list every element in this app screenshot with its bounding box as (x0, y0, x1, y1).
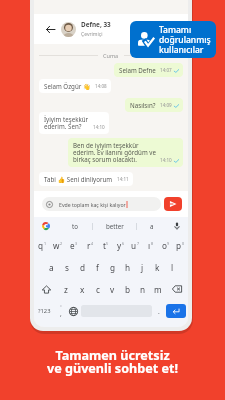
staticText: Tamamı doğrulanmış kullanıcılar (159, 24, 211, 55)
button[interactable]: y (113, 235, 128, 256)
button[interactable]: u (128, 235, 143, 256)
staticText: j (141, 262, 144, 273)
staticText: Selam Özgür 👋 (44, 82, 91, 90)
button[interactable]: better (93, 217, 136, 235)
staticText: a (49, 262, 54, 273)
button[interactable]: ı (143, 235, 158, 256)
button[interactable]: Google (34, 217, 58, 235)
staticText: Ben de iyiyim teşekkür ederim. Ev ilanın… (73, 141, 156, 164)
staticText: Defne, 33 (81, 20, 111, 29)
staticText: Nasılsın? (130, 101, 156, 109)
staticText: 2 (60, 241, 63, 246)
staticText: 14:10 (93, 124, 105, 130)
staticText: ı (148, 240, 151, 251)
staticText: 5 (106, 241, 109, 246)
staticText: Selam Defne (119, 66, 156, 74)
button[interactable]: h (120, 256, 135, 278)
button[interactable]: g (105, 256, 120, 278)
staticText: e (70, 240, 75, 251)
button[interactable]: a (43, 256, 59, 278)
staticText: 3 (75, 241, 78, 246)
button[interactable]: e (66, 235, 82, 256)
button[interactable]: b (120, 278, 135, 300)
button[interactable]: Back (44, 22, 56, 36)
staticText: ?123 (38, 307, 51, 315)
staticText: Tabi 👍 Seni dinliyorum (44, 175, 113, 183)
button[interactable]: a (137, 217, 166, 235)
button[interactable]: z (58, 278, 74, 300)
staticText: Çevrimiçi (81, 31, 103, 38)
button[interactable]: p (173, 235, 188, 256)
button[interactable]: l (165, 256, 180, 278)
staticText: d (80, 262, 86, 273)
button[interactable]: to (58, 217, 92, 235)
button[interactable]: f (90, 256, 105, 278)
button[interactable]: Change language (66, 300, 80, 322)
button[interactable]: Voice input (166, 217, 188, 235)
staticText: 8 (151, 241, 154, 246)
staticText: Tamamen ücretsiz ve güvenli sohbet et! (47, 347, 178, 377)
staticText: w (53, 240, 60, 251)
button[interactable]: . (153, 300, 164, 322)
button[interactable]: k (150, 256, 165, 278)
staticText: a (150, 222, 154, 230)
staticText: z (64, 284, 68, 295)
staticText: o (162, 240, 167, 251)
staticText: 6 (122, 241, 125, 246)
staticText: q (38, 240, 44, 251)
staticText: better (106, 222, 124, 230)
staticText: 0 (182, 241, 185, 246)
staticText: , (60, 309, 62, 318)
staticText: l (171, 262, 174, 273)
staticText: Evde toplam kaç kişi kalıyor (59, 201, 126, 208)
staticText: k (155, 262, 160, 273)
staticText: ° (60, 304, 62, 309)
staticText: p (176, 240, 182, 251)
staticText: Cuma (103, 52, 119, 59)
button[interactable]: d (75, 256, 90, 278)
staticText: 14:09 (160, 102, 172, 108)
button[interactable]: s (59, 256, 75, 278)
staticText: t (103, 240, 106, 251)
staticText: c (96, 284, 100, 295)
staticText: b (125, 284, 131, 295)
button[interactable]: c (90, 278, 105, 300)
staticText: u (131, 240, 137, 251)
staticText: to (72, 222, 78, 230)
button[interactable]: Add attachment (42, 197, 56, 211)
button[interactable]: n (135, 278, 150, 300)
staticText: 14:10 (160, 157, 172, 163)
staticText: g (110, 262, 116, 273)
button[interactable]: r (82, 235, 98, 256)
staticText: . (158, 307, 160, 316)
staticText: y (117, 240, 122, 251)
staticText: n (140, 284, 146, 295)
button[interactable]: Shift (34, 278, 58, 300)
button[interactable]: ° (55, 300, 66, 322)
staticText: x (80, 284, 85, 295)
button[interactable]: Tamamı doğrulanmış kullanıcılar (130, 21, 216, 58)
staticText: 9 (167, 241, 170, 246)
button[interactable]: Send (164, 197, 182, 211)
button[interactable]: Enter (166, 304, 186, 318)
staticText: 4 (91, 241, 94, 246)
staticText: r (87, 240, 91, 251)
button[interactable]: ?123 (34, 300, 55, 322)
button[interactable]: v (105, 278, 120, 300)
button[interactable]: x (74, 278, 90, 300)
button[interactable]: q (34, 235, 50, 256)
staticText: 14:11 (117, 176, 129, 182)
staticText: m (154, 284, 162, 295)
button[interactable]: o (158, 235, 173, 256)
button[interactable]: t (98, 235, 113, 256)
button[interactable]: j (135, 256, 150, 278)
button[interactable]: w (50, 235, 66, 256)
button[interactable]: m (150, 278, 165, 300)
staticText: 7 (137, 241, 140, 246)
staticText: v (110, 284, 115, 295)
button[interactable]: Backspace (165, 278, 188, 300)
staticText: İyiyim teşekkür ederim. Sen? (44, 115, 89, 131)
staticText: 14:08 (95, 83, 107, 89)
staticText: f (96, 262, 99, 273)
